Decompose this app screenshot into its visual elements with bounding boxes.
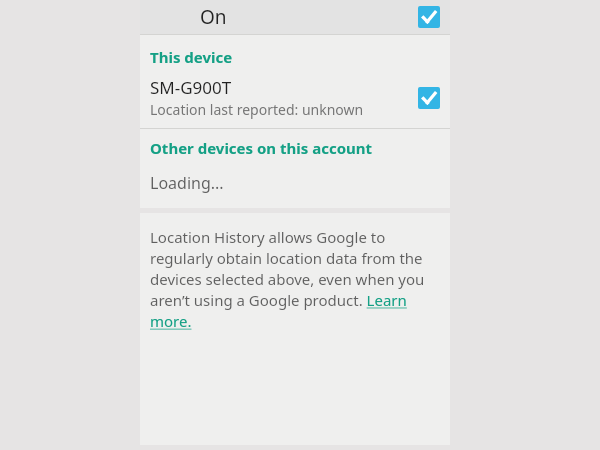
button[interactable]: Location History allows Google to regula… <box>150 227 438 332</box>
staticText: Other devices on this account <box>150 138 373 158</box>
other: SM-G900T selected <box>418 87 440 109</box>
other: Location History on <box>418 6 440 28</box>
staticText: Loading... <box>150 172 224 194</box>
button[interactable]: SM-G900T <box>140 76 450 123</box>
staticText: Location last reported: unknown <box>150 100 364 119</box>
staticText: This device <box>150 47 233 67</box>
staticText: SM-G900T <box>150 76 232 99</box>
staticText: On <box>200 4 227 30</box>
button[interactable]: On <box>140 0 450 34</box>
